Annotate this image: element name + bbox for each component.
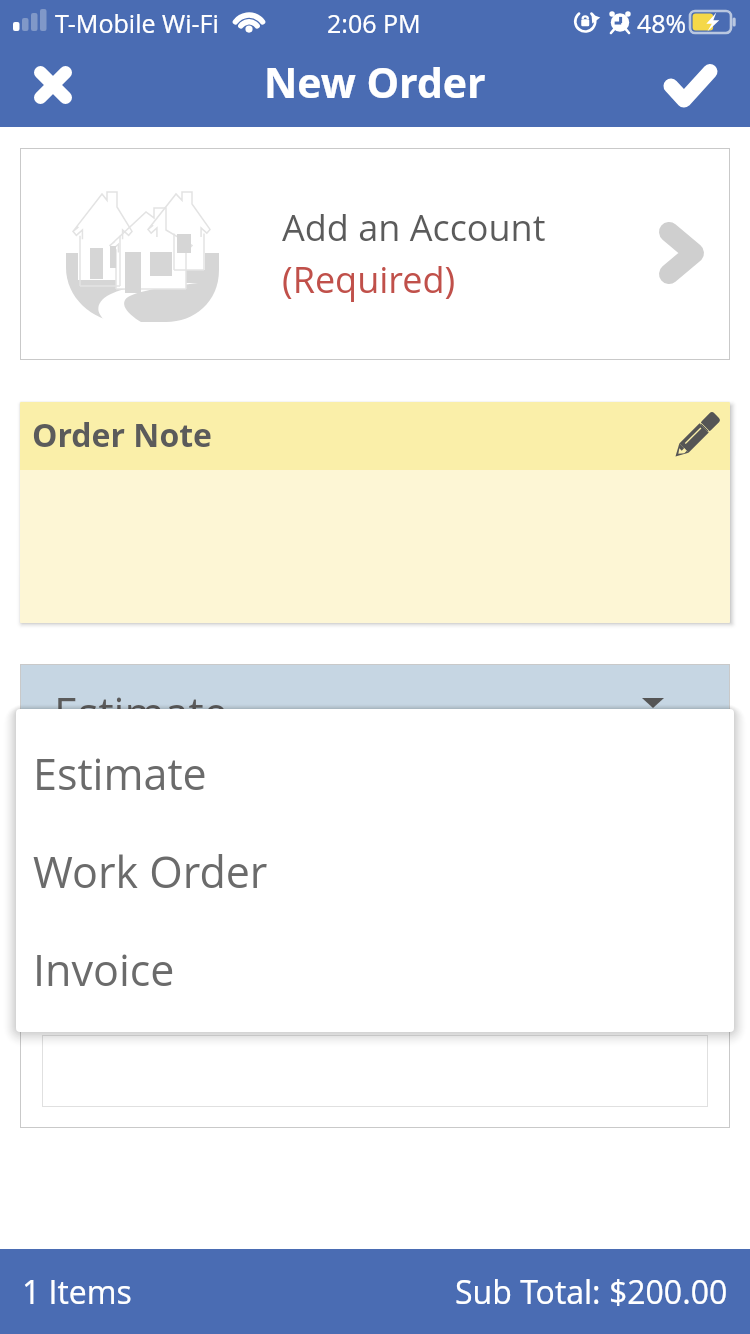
staticText: Sub Total: $200.00 <box>455 1270 728 1314</box>
staticText: New Order <box>264 54 486 110</box>
button[interactable]: Estimate <box>20 664 730 742</box>
staticText: Add an Account <box>282 203 546 252</box>
staticText: Invoice <box>33 940 175 999</box>
staticText: Estimate <box>33 744 207 803</box>
button[interactable] <box>42 1035 708 1107</box>
staticText: T-Mobile Wi-Fi <box>55 6 219 40</box>
staticText: Estimate <box>54 683 228 742</box>
button[interactable]: Add an Account <box>20 148 730 360</box>
button[interactable]: Close <box>12 44 94 126</box>
button[interactable]: Estimate <box>16 724 734 822</box>
button[interactable]: Order Note <box>20 402 730 470</box>
staticText: Order Note <box>32 413 212 457</box>
staticText: 1 Items <box>22 1270 132 1314</box>
staticText: Work Order <box>33 842 268 901</box>
button[interactable]: Work Order <box>16 822 734 920</box>
button[interactable]: Confirm <box>649 44 731 127</box>
staticText: (Required) <box>282 255 456 304</box>
staticText: 2:06 PM <box>327 6 421 40</box>
button[interactable]: Invoice <box>16 920 734 1018</box>
staticText: 48% <box>637 6 687 40</box>
